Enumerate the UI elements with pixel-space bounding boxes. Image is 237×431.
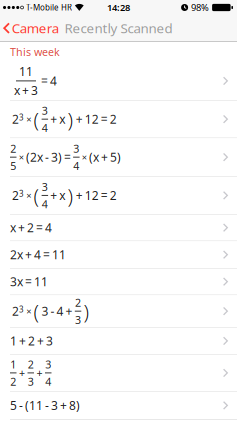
staticText: ( xyxy=(33,106,39,132)
button[interactable]: 11 xyxy=(0,62,237,101)
staticText: 1 xyxy=(10,357,16,371)
staticText: 23 xyxy=(12,187,24,203)
staticText: 1 + 2 + 3 xyxy=(10,333,53,349)
staticText: ) xyxy=(83,298,89,324)
staticText: 3x = 11 xyxy=(10,274,48,290)
staticText: (2x - 3) = xyxy=(26,149,71,165)
staticText: + x xyxy=(50,187,65,203)
staticText: 3 - 4 + xyxy=(42,303,73,319)
staticText: 3 xyxy=(28,374,34,389)
button[interactable]: 2 xyxy=(0,138,237,177)
staticText: T-Mobile HR xyxy=(26,2,72,13)
staticText: 4 xyxy=(45,374,51,389)
button[interactable]: Camera xyxy=(0,19,59,37)
staticText: 2 xyxy=(10,141,16,156)
staticText: ( xyxy=(33,298,39,324)
staticText: + x xyxy=(50,111,65,127)
staticText: 2 xyxy=(75,295,81,310)
staticText: Recently Scanned xyxy=(64,19,172,37)
staticText: 3 xyxy=(75,313,81,327)
staticText: 98% xyxy=(191,1,209,14)
button[interactable]: 5 - (11 - 3 + 8) xyxy=(0,392,237,420)
button[interactable]: 23 xyxy=(0,295,237,328)
staticText: 2x + 4 = 11 xyxy=(10,247,66,263)
staticText: × xyxy=(26,189,31,202)
staticText: + 12 = 2 xyxy=(76,187,117,203)
staticText: 5 - (11 - 3 + 8) xyxy=(10,397,80,413)
staticText: 11 xyxy=(19,63,33,79)
staticText: 3 xyxy=(42,180,48,194)
staticText: Camera xyxy=(12,19,59,37)
button[interactable]: 1 + 2 + 3 xyxy=(0,328,237,355)
staticText: 2 xyxy=(28,357,34,371)
staticText: 3 xyxy=(45,357,51,371)
staticText: + 12 = 2 xyxy=(76,111,117,127)
staticText: 14:28 xyxy=(107,1,130,14)
button[interactable]: x + 2 = 4 xyxy=(0,215,237,241)
staticText: = 4 xyxy=(41,73,57,89)
button[interactable]: 3x = 11 xyxy=(0,269,237,295)
staticText: 4 xyxy=(73,159,79,173)
staticText: x + 2 = 4 xyxy=(10,220,52,236)
button[interactable]: 23 xyxy=(0,177,237,215)
staticText: 2 xyxy=(10,374,16,389)
staticText: × xyxy=(82,151,87,163)
staticText: 3 xyxy=(73,141,79,156)
staticText: 5 xyxy=(10,159,16,173)
staticText: 4 xyxy=(42,121,48,135)
staticText: 23 xyxy=(12,111,24,127)
staticText: 23 xyxy=(12,303,24,319)
staticText: (x + 5) xyxy=(89,149,121,165)
staticText: × xyxy=(19,151,24,163)
staticText: × xyxy=(26,113,31,125)
button[interactable]: 23 xyxy=(0,101,237,138)
staticText: ) xyxy=(67,182,73,209)
button[interactable]: 1 xyxy=(0,355,237,392)
staticText: + xyxy=(36,366,42,380)
staticText: 3 xyxy=(42,103,48,118)
staticText: + xyxy=(19,366,25,380)
staticText: 4 xyxy=(42,197,48,211)
button[interactable]: 2x + 4 = 11 xyxy=(0,241,237,269)
staticText: This week xyxy=(10,45,60,59)
staticText: x + 3 xyxy=(14,82,38,98)
staticText: ) xyxy=(67,106,73,132)
staticText: × xyxy=(26,305,31,317)
staticText: ( xyxy=(33,182,39,209)
